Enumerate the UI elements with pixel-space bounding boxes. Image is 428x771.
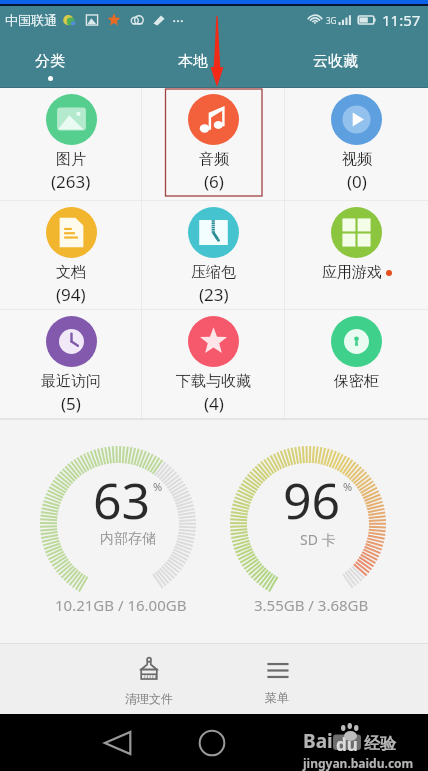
- staticText: 经验: [364, 734, 396, 754]
- button[interactable]: 图片: [0, 88, 142, 201]
- staticText: %: [153, 479, 163, 494]
- staticText: 云收藏: [313, 52, 358, 71]
- staticText: (94): [56, 283, 86, 306]
- button[interactable]: 清理文件: [101, 643, 197, 714]
- staticText: 63: [93, 466, 151, 534]
- button[interactable]: 本地: [142, 36, 285, 88]
- staticText: 3.55GB / 3.68GB: [254, 595, 369, 615]
- staticText: (5): [61, 392, 81, 415]
- staticText: 11:57: [382, 10, 421, 30]
- staticText: 最近访问: [41, 372, 101, 391]
- staticText: jingyan.baidu.com: [303, 755, 414, 771]
- staticText: 10.21GB / 16.00GB: [55, 595, 187, 615]
- staticText: 内部存储: [100, 530, 156, 548]
- staticText: 视频: [342, 150, 372, 169]
- button[interactable]: 应用游戏: [285, 201, 428, 310]
- button[interactable]: 分类: [0, 36, 142, 88]
- staticText: (23): [199, 283, 229, 306]
- button[interactable]: 最近访问: [0, 310, 142, 418]
- staticText: (0): [347, 170, 367, 193]
- staticText: (6): [204, 170, 224, 193]
- button[interactable]: 保密柜: [285, 310, 428, 418]
- staticText: 中国联通: [5, 12, 57, 28]
- staticText: 下载与收藏: [176, 372, 251, 391]
- staticText: (4): [204, 392, 224, 415]
- staticText: %: [343, 479, 353, 494]
- button[interactable]: 菜单: [229, 643, 325, 714]
- staticText: 清理文件: [125, 691, 173, 706]
- button[interactable]: 云收藏: [285, 36, 428, 88]
- button[interactable]: 文档: [0, 201, 142, 310]
- staticText: 保密柜: [334, 372, 379, 391]
- button[interactable]: 音频: [142, 88, 285, 201]
- button[interactable]: 视频: [285, 88, 428, 201]
- staticText: SD 卡: [300, 530, 336, 549]
- button[interactable]: 下载与收藏: [142, 310, 285, 418]
- staticText: 音频: [199, 150, 229, 169]
- staticText: 菜单: [265, 690, 289, 705]
- staticText: 本地: [178, 52, 208, 71]
- staticText: du: [336, 733, 358, 756]
- staticText: 3G: [326, 15, 337, 26]
- staticText: 压缩包: [191, 263, 236, 282]
- staticText: 图片: [56, 150, 86, 169]
- button[interactable]: Back: [96, 721, 140, 765]
- staticText: 96: [283, 466, 341, 534]
- staticText: 应用游戏: [322, 263, 382, 282]
- staticText: (263): [51, 170, 91, 193]
- staticText: 分类: [35, 52, 65, 71]
- staticText: 文档: [56, 263, 86, 282]
- button[interactable]: 压缩包: [142, 201, 285, 310]
- button[interactable]: Home: [190, 721, 234, 765]
- staticText: Bai: [303, 728, 333, 754]
